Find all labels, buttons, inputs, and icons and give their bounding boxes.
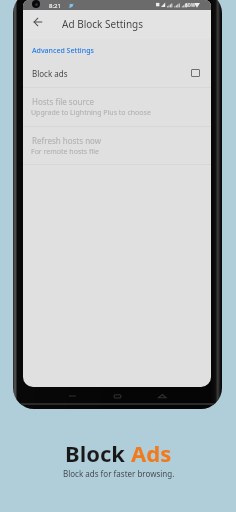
button[interactable]: Back (26, 10, 49, 33)
staticText: Hosts file source (32, 96, 94, 107)
staticText: Advanced Settings (32, 46, 94, 56)
staticText: Block (65, 438, 125, 468)
staticText: Refresh hosts now (32, 135, 102, 146)
staticText: Ad Block Settings (62, 17, 144, 31)
button[interactable]: Block ads (23, 62, 211, 84)
staticText: For remote hosts file (31, 147, 99, 157)
staticText: Block ads for faster browsing. (63, 468, 175, 479)
staticText: 60% (185, 2, 195, 9)
staticText: Upgrade to Lightning Plus to choose (31, 108, 151, 118)
staticText: Block ads (32, 68, 68, 79)
staticText: 8:21 (49, 2, 61, 10)
staticText: Ads (131, 438, 172, 468)
